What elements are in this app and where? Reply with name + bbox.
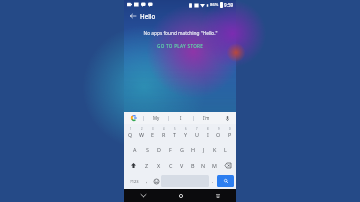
- button[interactable]: Recent apps: [199, 189, 236, 202]
- button[interactable]: Back: [127, 10, 138, 21]
- button[interactable]: ,: [143, 174, 151, 188]
- staticText: K: [213, 146, 217, 153]
- staticText: ?123: [130, 179, 139, 184]
- staticText: No apps found matching "Hello.": [143, 30, 218, 37]
- button[interactable]: 6: [180, 124, 191, 141]
- staticText: 6: [185, 127, 187, 131]
- button[interactable]: Search: [217, 175, 234, 187]
- staticText: L: [224, 146, 227, 153]
- button[interactable]: Home: [162, 189, 199, 202]
- button[interactable]: I: [169, 112, 193, 124]
- staticText: B: [191, 162, 195, 169]
- staticText: GO TO PLAY STORE: [157, 43, 204, 49]
- staticText: ,: [146, 178, 148, 185]
- staticText: 3: [152, 127, 154, 131]
- button[interactable]: K: [209, 141, 220, 157]
- button[interactable]: 8: [202, 124, 213, 141]
- staticText: S: [146, 146, 149, 153]
- staticText: 2: [141, 127, 143, 131]
- button[interactable]: Backspace: [220, 157, 235, 173]
- button[interactable]: ?123: [126, 174, 143, 188]
- button[interactable]: J: [198, 141, 209, 157]
- staticText: P: [228, 131, 232, 138]
- button[interactable]: 7: [191, 124, 202, 141]
- button[interactable]: 5: [169, 124, 180, 141]
- staticText: F: [169, 146, 172, 153]
- button[interactable]: Shift: [125, 157, 141, 173]
- button[interactable]: X: [153, 157, 165, 173]
- button[interactable]: B: [187, 157, 198, 173]
- button[interactable]: 2: [136, 124, 147, 141]
- staticText: 86%: [210, 2, 219, 8]
- button[interactable]: M: [209, 157, 220, 173]
- button[interactable]: GO TO PLAY STORE: [154, 42, 207, 50]
- staticText: U: [195, 131, 199, 138]
- staticText: N: [201, 162, 206, 169]
- button[interactable]: 9: [213, 124, 224, 141]
- staticText: 9: [218, 127, 220, 131]
- button[interactable]: Back: [124, 189, 162, 202]
- staticText: A: [133, 146, 137, 153]
- staticText: 7: [196, 127, 198, 131]
- staticText: W: [139, 131, 145, 138]
- button[interactable]: Z: [141, 157, 153, 173]
- button[interactable]: Emoji: [151, 174, 161, 188]
- button[interactable]: 1: [125, 124, 136, 141]
- button[interactable]: 0: [224, 124, 235, 141]
- staticText: I'm: [203, 115, 210, 121]
- button[interactable]: L: [220, 141, 231, 157]
- staticText: 9:59: [224, 2, 234, 8]
- button[interactable]: 4: [158, 124, 169, 141]
- button[interactable]: N: [198, 157, 209, 173]
- button[interactable]: .: [209, 174, 217, 188]
- staticText: G: [180, 146, 184, 153]
- button[interactable]: C: [165, 157, 176, 173]
- button[interactable]: G: [176, 141, 187, 157]
- staticText: X: [157, 162, 161, 169]
- button[interactable]: I'm: [194, 112, 218, 124]
- staticText: J: [203, 146, 205, 153]
- staticText: C: [169, 162, 173, 169]
- button[interactable]: F: [165, 141, 176, 157]
- staticText: Y: [184, 131, 188, 138]
- button[interactable]: H: [187, 141, 198, 157]
- staticText: I: [180, 115, 182, 121]
- staticText: T: [173, 131, 176, 138]
- button[interactable]: My: [144, 112, 168, 124]
- staticText: 4: [163, 127, 165, 131]
- staticText: D: [157, 146, 161, 153]
- button[interactable]: Google search: [124, 112, 143, 124]
- staticText: Z: [145, 162, 149, 169]
- button[interactable]: S: [141, 141, 153, 157]
- staticText: M: [212, 162, 217, 169]
- button[interactable]: Voice input: [218, 112, 236, 124]
- staticText: Hello: [140, 12, 156, 20]
- staticText: O: [216, 131, 221, 138]
- staticText: E: [151, 131, 154, 138]
- button[interactable]: A: [129, 141, 141, 157]
- staticText: 0: [229, 127, 231, 131]
- button[interactable]: D: [153, 141, 165, 157]
- staticText: My: [153, 115, 160, 121]
- staticText: Q: [128, 131, 133, 138]
- staticText: .: [212, 178, 214, 185]
- staticText: 5: [174, 127, 176, 131]
- staticText: 8: [207, 127, 209, 131]
- staticText: 1: [130, 127, 132, 131]
- staticText: H: [191, 146, 195, 153]
- button[interactable]: 3: [147, 124, 158, 141]
- staticText: I: [207, 131, 209, 138]
- staticText: R: [162, 131, 166, 138]
- button[interactable]: V: [176, 157, 187, 173]
- staticText: V: [180, 162, 184, 169]
